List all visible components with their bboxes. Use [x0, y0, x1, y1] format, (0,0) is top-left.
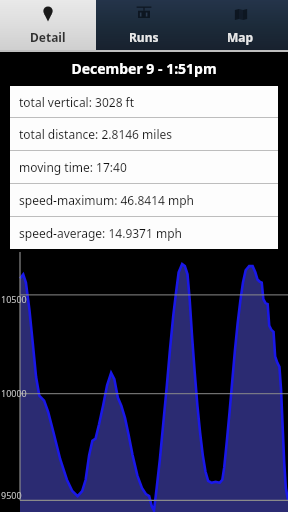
button[interactable]: Map	[192, 0, 288, 50]
button[interactable]: speed-average: 14.9371 mph	[10, 217, 278, 249]
staticText: 10000	[1, 387, 27, 399]
staticText: Runs	[129, 29, 159, 45]
staticText: Detail	[30, 29, 66, 45]
staticText: total vertical: 3028 ft	[19, 94, 135, 110]
button[interactable]: speed-maximum: 46.8414 mph	[10, 184, 278, 216]
staticText: 9500	[1, 489, 22, 501]
staticText: total distance: 2.8146 miles	[19, 126, 173, 142]
staticText: speed-average: 14.9371 mph	[19, 225, 182, 241]
staticText: moving time: 17:40	[19, 159, 127, 175]
staticText: 10500	[1, 293, 27, 305]
staticText: Map	[227, 29, 254, 45]
button[interactable]: Runs	[96, 0, 192, 50]
button[interactable]: Detail	[0, 0, 96, 50]
staticText: speed-maximum: 46.8414 mph	[19, 192, 195, 208]
button[interactable]: total distance: 2.8146 miles	[10, 118, 278, 150]
button[interactable]: moving time: 17:40	[10, 151, 278, 183]
staticText: December 9 - 1:51pm	[0, 59, 288, 78]
button[interactable]: total vertical: 3028 ft	[10, 86, 278, 117]
